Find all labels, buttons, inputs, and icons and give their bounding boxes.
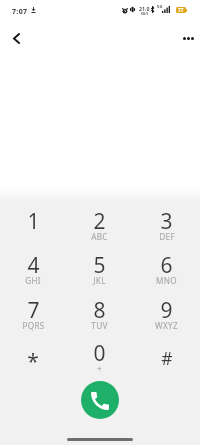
button[interactable]: More options (174, 24, 200, 52)
button[interactable]: 1 (0, 201, 66, 245)
button[interactable]: # (133, 333, 200, 377)
staticText: MNO (156, 275, 177, 286)
staticText: 7 (27, 296, 40, 325)
staticText: 5 (93, 251, 106, 280)
staticText: DEF (159, 231, 175, 242)
staticText: KB/S (141, 12, 149, 16)
staticText: WXYZ (155, 320, 178, 331)
staticText: 6 (160, 251, 173, 280)
staticText: ABC (91, 231, 108, 242)
staticText: * (27, 347, 39, 376)
staticText: JKL (93, 275, 106, 286)
button[interactable]: 9 (133, 290, 200, 334)
button[interactable]: 3 (133, 201, 200, 245)
button[interactable]: 2 (66, 201, 133, 245)
staticText: 9 (160, 296, 173, 325)
staticText: GHI (25, 275, 41, 286)
staticText: 0 (93, 339, 106, 368)
staticText: 5G (157, 4, 163, 10)
staticText: # (161, 346, 173, 370)
button[interactable]: * (0, 333, 66, 377)
button[interactable]: Call (81, 381, 119, 419)
staticText: 1 (27, 207, 40, 236)
button[interactable]: 8 (66, 290, 133, 334)
staticText: 77 (178, 7, 184, 13)
button[interactable]: 7 (0, 290, 66, 334)
staticText: 4 (27, 251, 40, 280)
staticText: 2 (93, 207, 106, 236)
staticText: + (97, 363, 102, 374)
staticText: 8 (93, 296, 106, 325)
button[interactable]: 0 (66, 333, 133, 377)
button[interactable]: 5 (66, 245, 133, 289)
staticText: 3 (160, 207, 173, 236)
staticText: 7:07 (12, 7, 28, 17)
staticText: TUV (91, 320, 108, 331)
staticText: 21.0 (139, 5, 150, 12)
staticText: PQRS (22, 320, 45, 331)
button[interactable]: 6 (133, 245, 200, 289)
button[interactable]: 4 (0, 245, 66, 289)
button[interactable]: Back (2, 24, 30, 52)
